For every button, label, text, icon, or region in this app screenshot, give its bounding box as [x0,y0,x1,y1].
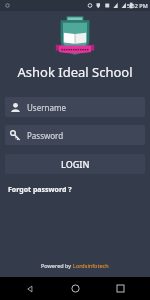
staticText: LOGIN [61,158,90,170]
button[interactable]: LOGIN [5,154,145,174]
staticText: Password [27,130,64,141]
staticText: Ashok Ideal School [0,63,150,81]
button[interactable]: Back [15,277,45,300]
staticText: Forgot password ? [8,185,72,195]
button[interactable]: Password [5,125,145,145]
staticText: Lordsinfotech [73,262,109,269]
button[interactable]: Username [5,97,145,117]
button[interactable]: Home [60,277,90,300]
button[interactable]: Forgot password ? [6,183,74,197]
staticText: Username [27,102,66,113]
staticText: 5:52 PM [127,2,148,9]
button[interactable]: Recent apps [105,277,135,300]
staticText: Powered by [41,262,73,269]
